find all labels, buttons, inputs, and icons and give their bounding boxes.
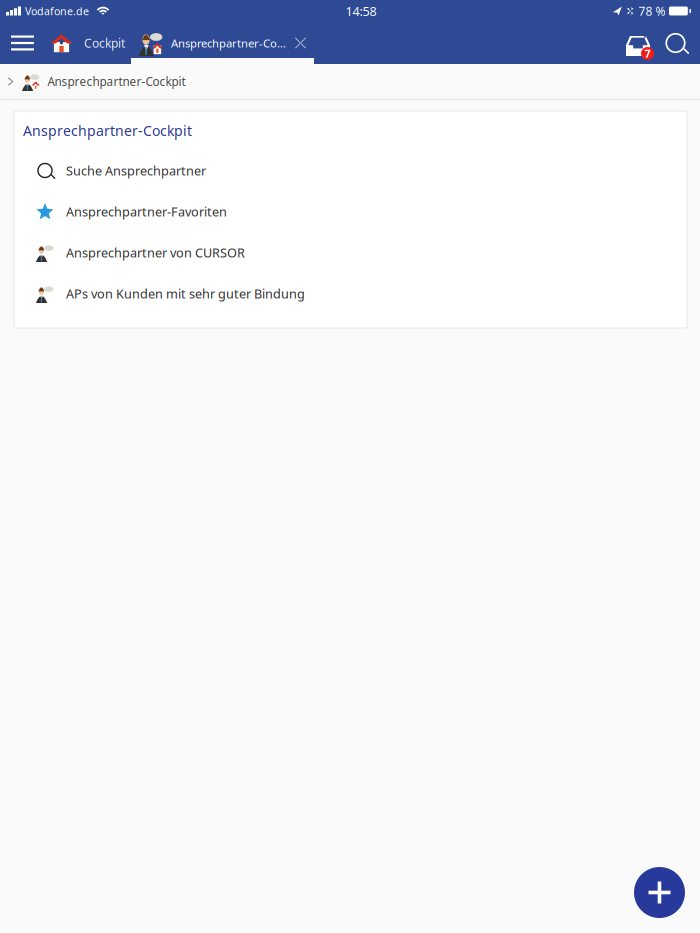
button[interactable]: Neu anlegen [634,867,685,918]
staticText: APs von Kunden mit sehr guter Bindung [66,285,305,302]
button[interactable]: Suche Ansprechpartner [14,150,687,191]
staticText: 78 % [638,3,665,19]
button[interactable]: Cockpit [49,22,138,64]
staticText: Vodafone.de [25,4,89,18]
button[interactable]: APs von Kunden mit sehr guter Bindung [14,273,687,314]
button[interactable]: Posteingang [621,28,655,58]
staticText: Ansprechpartner-Cockpit [47,73,185,89]
staticText: Cockpit [84,35,125,51]
button[interactable]: Ansprechpartner-Co... [138,22,315,64]
button[interactable]: Menu [0,22,49,64]
staticText: Ansprechpartner-Cockpit [23,121,192,140]
button[interactable]: Ansprechpartner-Favoriten [14,191,687,232]
staticText: Suche Ansprechpartner [66,162,206,179]
staticText: Ansprechpartner von CURSOR [66,244,245,261]
staticText: 14:58 [345,2,376,20]
staticText: Ansprechpartner-Co... [171,35,286,51]
button[interactable]: Suche [655,22,700,64]
button[interactable]: Ansprechpartner von CURSOR [14,232,687,273]
staticText: 7 [644,46,650,61]
staticText: Ansprechpartner-Favoriten [66,203,227,220]
